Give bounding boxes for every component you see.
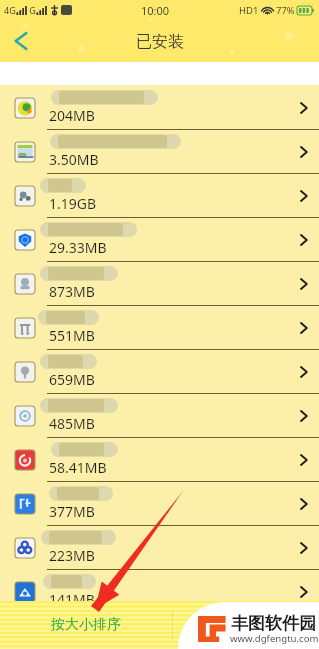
staticText: 659MB [49,370,95,389]
button[interactable]: 551MB [0,306,319,350]
staticText: 58.41MB [49,458,107,477]
button[interactable]: 377MB [0,482,319,526]
staticText: 3.50MB [49,150,99,169]
staticText: www.dgfengtu.com [230,632,319,645]
button[interactable]: 按大小排序 [0,601,172,649]
staticText: G [27,4,36,16]
staticText: 485MB [49,414,95,433]
staticText: 377MB [49,502,95,521]
staticText: 141MB [49,590,95,609]
staticText: 4G [4,4,16,16]
staticText: 223MB [49,546,95,565]
staticText: 29.33MB [49,238,107,257]
staticText: 丰图软件园 [231,613,316,634]
button[interactable]: 223MB [0,526,319,570]
button[interactable]: 3.50MB [0,130,319,174]
button[interactable]: 1.19GB [0,174,319,218]
staticText: 10:00 [141,3,170,18]
button[interactable]: 659MB [0,350,319,394]
button[interactable]: 204MB [0,86,319,130]
button[interactable]: 485MB [0,394,319,438]
staticText: HD1 [239,4,259,17]
staticText: 551MB [49,326,95,345]
staticText: 1.19GB [49,194,97,213]
staticText: 873MB [49,282,95,301]
staticText: 204MB [49,106,95,125]
staticText: 按大小排序 [51,616,121,634]
button[interactable]: Back [0,20,42,62]
staticText: 已安装 [136,32,184,52]
staticText: 77% [276,4,295,17]
button[interactable]: 29.33MB [0,218,319,262]
button[interactable]: 58.41MB [0,438,319,482]
button[interactable]: 141MB [0,570,319,602]
button[interactable]: 873MB [0,262,319,306]
